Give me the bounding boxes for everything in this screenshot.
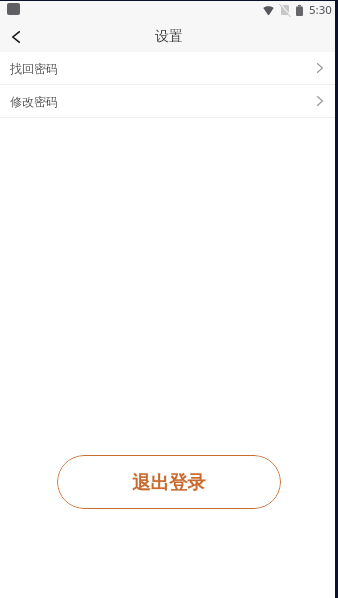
- button[interactable]: 找回密码: [0, 52, 338, 85]
- staticText: 修改密码: [10, 94, 58, 109]
- staticText: 找回密码: [10, 61, 58, 76]
- button[interactable]: Back: [0, 21, 32, 52]
- staticText: 设置: [155, 28, 183, 46]
- staticText: 5:30: [309, 2, 332, 18]
- staticText: 退出登录: [132, 471, 206, 494]
- button[interactable]: 修改密码: [0, 85, 338, 118]
- button[interactable]: 退出登录: [57, 455, 281, 509]
